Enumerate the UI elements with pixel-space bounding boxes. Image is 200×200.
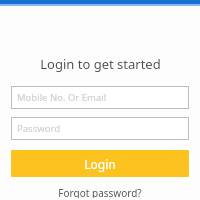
button[interactable]: Login	[11, 150, 189, 177]
staticText: Login	[84, 156, 116, 172]
staticText: Mobile No. Or Email	[17, 91, 107, 104]
staticText: Password	[17, 122, 60, 135]
button[interactable]: Forgot password?	[58, 186, 142, 198]
button[interactable]: Password	[11, 117, 189, 140]
staticText: Forgot password?	[58, 186, 142, 198]
staticText: Login to get started	[40, 55, 161, 73]
button[interactable]: Mobile number or email	[11, 86, 189, 109]
